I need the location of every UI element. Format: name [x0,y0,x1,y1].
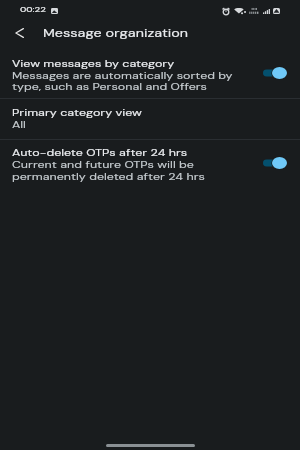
button[interactable]: Toggle [263,157,287,169]
button[interactable]: View messages by category [0,49,300,98]
button[interactable]: Back [7,21,31,45]
staticText: 00:22 [20,5,46,15]
button[interactable]: Auto-delete OTPs after 24 hrs [0,139,300,188]
button[interactable]: Toggle [263,67,287,79]
staticText: type, such as Personal and Offers [12,80,207,92]
staticText: Message organization [43,26,189,40]
button[interactable]: Primary category view [0,99,300,138]
staticText: All [12,118,26,130]
staticText: Current and future OTPs will be [12,158,194,170]
staticText: Auto-delete OTPs after 24 hrs [12,146,187,158]
staticText: Primary category view [12,106,142,118]
staticText: View messages by category [12,57,174,69]
staticText: Messages are automatically sorted by [12,69,233,81]
staticText: permanently deleted after 24 hrs [12,170,206,182]
